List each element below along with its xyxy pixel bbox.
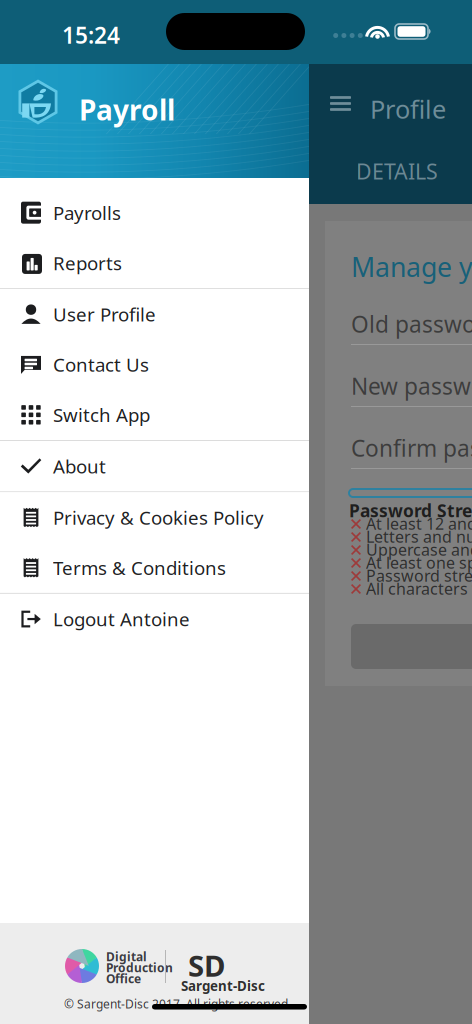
staticText: Profile xyxy=(370,92,446,126)
staticText: Contact Us xyxy=(53,352,149,377)
staticText: Payroll xyxy=(79,91,175,128)
staticText: All characters valid xyxy=(366,578,472,599)
staticText: © Sargent-Disc 2017. All rights reserved… xyxy=(64,996,291,1012)
staticText: 15:24 xyxy=(62,20,120,50)
staticText: Terms & Conditions xyxy=(53,555,226,580)
staticText: Logout Antoine xyxy=(53,607,190,631)
staticText: At least one special character xyxy=(366,552,472,573)
staticText: Digital xyxy=(106,948,147,964)
staticText: Password strength is strong xyxy=(366,565,472,586)
button[interactable]: Logout Antoine xyxy=(0,594,309,644)
staticText: Letters and numbers xyxy=(366,526,472,547)
staticText: New password* xyxy=(351,371,472,401)
staticText: At least 12 and no more than 128 xyxy=(366,513,472,534)
button[interactable]: About xyxy=(0,441,309,491)
button[interactable]: Privacy & Cookies Policy xyxy=(0,492,309,543)
staticText: Password Strength: Very Weak xyxy=(349,499,472,522)
staticText: Production xyxy=(106,959,173,975)
staticText: Payrolls xyxy=(53,200,121,225)
staticText: Office xyxy=(106,970,141,986)
button[interactable]: Terms & Conditions xyxy=(0,543,309,593)
staticText: DETAILS xyxy=(356,157,438,185)
staticText: Uppercase and lowercase xyxy=(366,539,472,560)
button[interactable]: Reports xyxy=(0,238,309,288)
staticText: Privacy & Cookies Policy xyxy=(53,505,264,530)
staticText: SD xyxy=(188,946,225,985)
staticText: Manage your password xyxy=(351,249,472,284)
staticText: Sargent-Disc xyxy=(181,977,265,995)
button[interactable]: Payrolls xyxy=(0,187,309,238)
staticText: Reports xyxy=(53,251,122,275)
button[interactable]: Contact Us xyxy=(0,339,309,390)
button[interactable]: Switch App xyxy=(0,390,309,440)
staticText: Old password* xyxy=(351,309,472,339)
staticText: Confirm password* xyxy=(351,433,472,463)
staticText: User Profile xyxy=(53,302,156,327)
staticText: Switch App xyxy=(53,402,150,427)
button[interactable]: User Profile xyxy=(0,289,309,339)
staticText: About xyxy=(53,454,106,479)
